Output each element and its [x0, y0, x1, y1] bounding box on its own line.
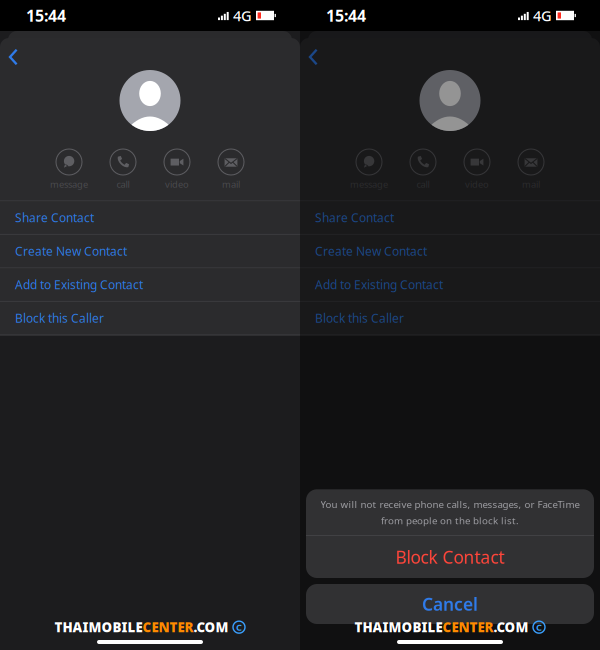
button[interactable]: Add to Existing Contact: [0, 268, 300, 302]
staticText: mail: [522, 178, 540, 190]
button[interactable]: Share Contact: [0, 201, 300, 235]
staticText: 4G: [233, 6, 252, 25]
staticText: 15:44: [326, 5, 366, 26]
button[interactable]: Cancel: [306, 584, 594, 624]
button[interactable]: video: [450, 149, 504, 190]
button[interactable]: Back: [300, 43, 330, 71]
staticText: message: [50, 178, 88, 190]
button[interactable]: Block this Caller: [300, 302, 600, 335]
button[interactable]: Add to Existing Contact: [300, 268, 600, 302]
staticText: Block this Caller: [15, 310, 104, 326]
staticText: video: [465, 178, 489, 190]
staticText: C: [236, 621, 242, 633]
button[interactable]: Block this Caller: [0, 302, 300, 335]
button[interactable]: call: [396, 149, 450, 190]
button[interactable]: Back: [0, 43, 30, 71]
button[interactable]: call: [96, 149, 150, 190]
staticText: call: [416, 178, 429, 190]
staticText: Create New Contact: [315, 243, 427, 259]
staticText: Create New Contact: [15, 243, 127, 259]
button[interactable]: mail: [504, 149, 558, 190]
staticText: You will not receive phone calls, messag…: [320, 497, 579, 511]
button[interactable]: message: [42, 149, 96, 190]
staticText: CENTER: [442, 618, 493, 636]
staticText: CENTER: [142, 618, 193, 636]
staticText: Cancel: [422, 592, 478, 615]
staticText: Block this Caller: [315, 310, 404, 326]
staticText: Add to Existing Contact: [15, 276, 143, 293]
button[interactable]: message: [342, 149, 396, 190]
button[interactable]: Create New Contact: [300, 235, 600, 268]
button[interactable]: Share Contact: [300, 201, 600, 235]
button[interactable]: Block Contact: [306, 536, 594, 578]
button[interactable]: mail: [204, 149, 258, 190]
staticText: video: [165, 178, 189, 190]
staticText: THAIMOBILE: [354, 618, 442, 636]
staticText: mail: [222, 178, 240, 190]
staticText: C: [536, 621, 542, 633]
staticText: Add to Existing Contact: [315, 276, 443, 293]
staticText: 4G: [533, 6, 552, 25]
staticText: Share Contact: [15, 209, 94, 226]
staticText: .COM: [493, 618, 528, 636]
staticText: from people on the block list.: [381, 514, 519, 527]
button[interactable]: Create New Contact: [0, 235, 300, 268]
staticText: 15:44: [26, 5, 66, 26]
staticText: .COM: [193, 618, 228, 636]
staticText: call: [116, 178, 129, 190]
staticText: THAIMOBILE: [54, 618, 142, 636]
staticText: message: [350, 178, 388, 190]
staticText: Share Contact: [315, 209, 394, 226]
button[interactable]: video: [150, 149, 204, 190]
staticText: Block Contact: [395, 545, 504, 568]
